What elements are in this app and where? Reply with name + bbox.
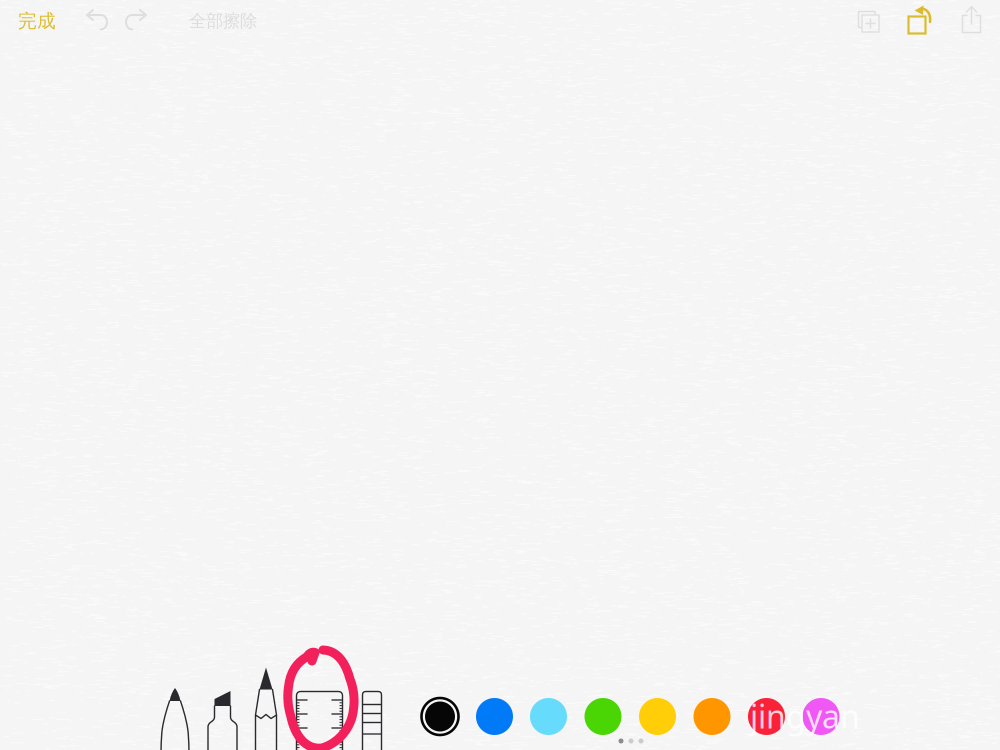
staticText: jingyan <box>750 695 860 737</box>
button[interactable]: Colour 2 <box>472 694 516 738</box>
button[interactable]: Colour 3 <box>526 694 570 738</box>
button[interactable]: Undo <box>77 2 115 40</box>
button[interactable]: Ruler <box>295 688 343 750</box>
button[interactable]: Pencil <box>246 668 286 750</box>
button[interactable]: 全部擦除 <box>178 1 268 41</box>
button[interactable]: Colour 6 <box>690 694 734 738</box>
button[interactable]: Marker <box>202 686 242 750</box>
button[interactable]: Colour 7 <box>744 694 788 738</box>
staticText: 全部擦除 <box>189 10 257 32</box>
button[interactable]: Colour 4 <box>581 694 625 738</box>
button[interactable]: Colour 8 <box>799 694 843 738</box>
button[interactable]: Rotate <box>898 0 940 41</box>
button[interactable]: 完成 <box>10 1 64 41</box>
button[interactable]: Colour 5 <box>635 694 679 738</box>
button[interactable]: Share <box>950 0 992 41</box>
button[interactable]: Eraser <box>359 688 385 750</box>
staticText: 完成 <box>18 9 56 32</box>
button[interactable]: Black <box>418 694 462 738</box>
button[interactable]: Add page <box>848 1 890 43</box>
button[interactable]: Pen <box>155 686 195 750</box>
button[interactable]: Redo <box>118 2 156 40</box>
